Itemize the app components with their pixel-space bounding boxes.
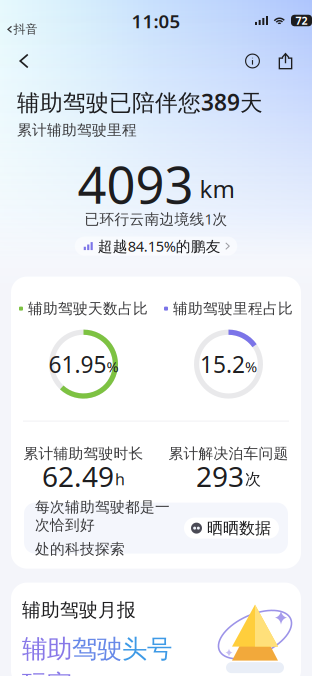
staticText: 驾驶 bbox=[72, 634, 122, 665]
staticText: km bbox=[199, 173, 234, 205]
staticText: 头号 bbox=[122, 634, 172, 665]
staticText: 72 bbox=[295, 13, 307, 28]
staticText: 累计辅助驾驶里程 bbox=[17, 121, 137, 139]
staticText: 293 bbox=[196, 457, 244, 495]
staticText: 晒晒数据 bbox=[207, 518, 271, 538]
button[interactable]: Info bbox=[236, 44, 269, 78]
staticText: 4093 bbox=[77, 150, 193, 218]
staticText: h bbox=[115, 468, 125, 490]
staticText: 每次辅助驾驶都是一次恰到好 bbox=[35, 498, 170, 534]
staticText: 次 bbox=[245, 469, 261, 489]
staticText: % bbox=[106, 357, 118, 376]
button[interactable]: Share bbox=[269, 44, 302, 78]
staticText: 15.2 bbox=[200, 349, 245, 379]
button[interactable]: Back bbox=[4, 44, 44, 78]
staticText: 62.49 bbox=[42, 457, 114, 495]
button[interactable]: 晒晒数据 bbox=[184, 518, 279, 539]
staticText: % bbox=[245, 357, 257, 376]
staticText: 辅助驾驶天数占比 bbox=[28, 300, 148, 318]
staticText: 累计辅助驾驶时长 bbox=[23, 445, 143, 463]
staticText: 超越84.15%的鹏友 bbox=[98, 236, 221, 256]
staticText: 辅助驾驶里程占比 bbox=[173, 300, 293, 318]
staticText: 辅助驾驶已陪伴您389天 bbox=[17, 87, 263, 117]
staticText: 61.95 bbox=[48, 349, 106, 379]
staticText: 抖音 bbox=[13, 22, 37, 37]
staticText: 处的科技探索 bbox=[35, 540, 125, 558]
button[interactable]: 超越84.15%的鹏友 bbox=[75, 237, 237, 256]
staticText: 辅助驾驶月报 bbox=[22, 599, 136, 621]
staticText: 已环行云南边境线1次 bbox=[84, 209, 227, 229]
staticText: 11:05 bbox=[131, 9, 180, 33]
staticText: 累计解决泊车问题 bbox=[168, 445, 288, 463]
staticText: 辅助 bbox=[22, 634, 72, 665]
staticText: 玩家 bbox=[22, 669, 72, 676]
